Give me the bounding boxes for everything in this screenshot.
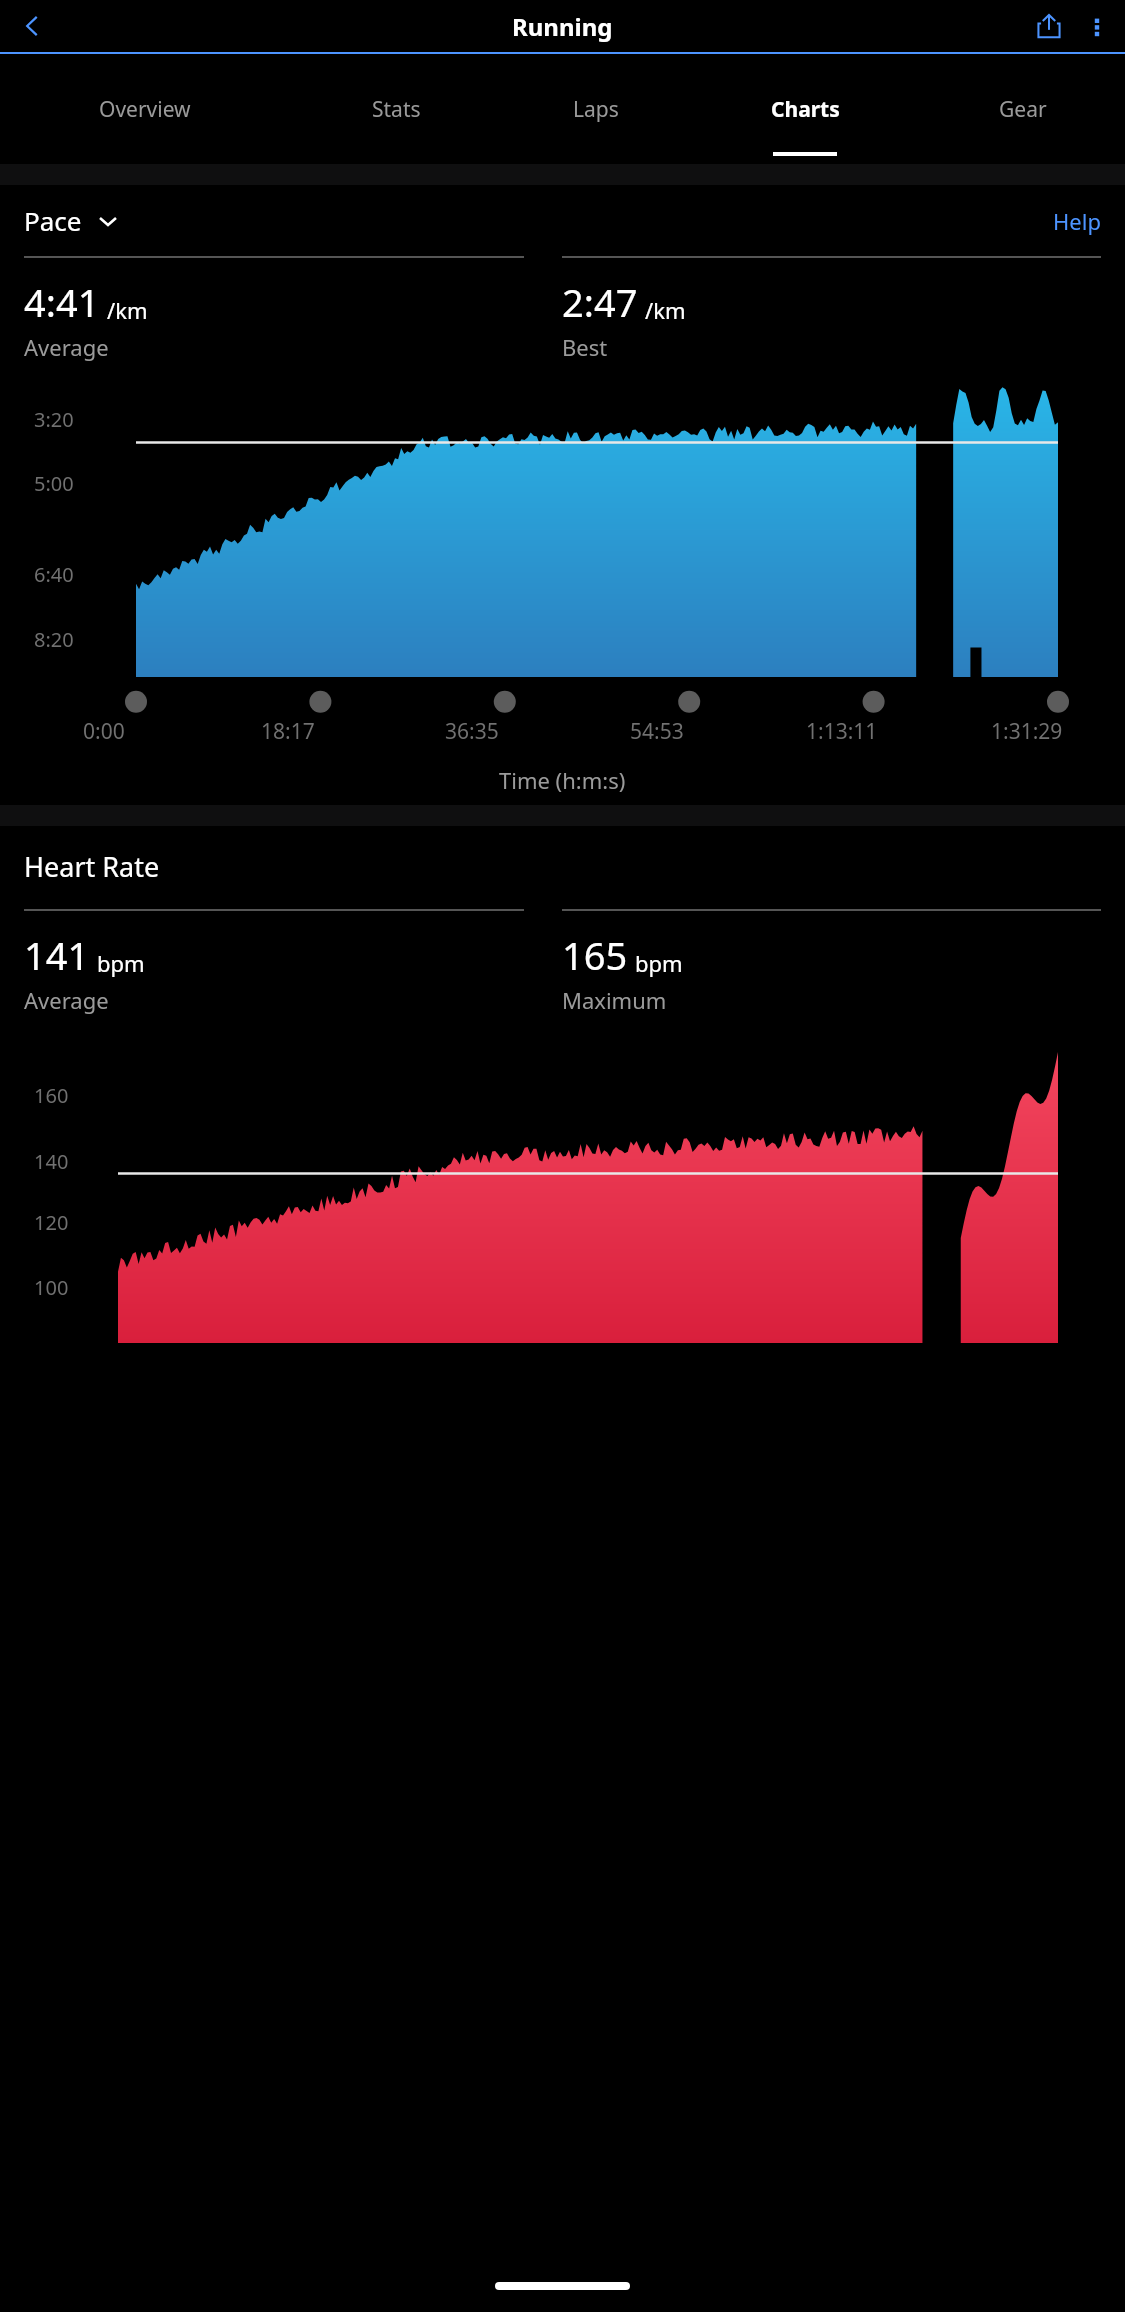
staticText: 100 [34,1274,69,1301]
staticText: Laps [573,95,619,124]
button[interactable]: More options [1073,2,1121,50]
staticText: /km [645,295,686,325]
staticText: 6:40 [34,561,74,588]
button[interactable]: Stats [290,54,503,164]
button[interactable]: Heart Rate [24,848,160,885]
button[interactable]: Pace [24,203,118,238]
staticText: 3:20 [34,406,74,433]
button[interactable]: Share [1025,2,1073,50]
staticText: 141 [24,929,90,981]
button[interactable]: Back [10,4,54,48]
staticText: 0:00 [83,717,125,746]
staticText: Charts [771,95,840,124]
staticText: 4:41 [24,276,100,328]
button[interactable]: Help [1053,206,1101,236]
button[interactable]: Charts [689,54,921,164]
staticText: Gear [999,95,1047,124]
staticText: bpm [635,948,683,978]
staticText: 1:31:29 [991,717,1063,746]
staticText: Pace [24,203,82,238]
button[interactable]: Overview [0,54,290,164]
staticText: 54:53 [630,717,684,746]
staticText: Help [1053,206,1101,236]
staticText: Best [562,332,608,362]
staticText: 8:20 [34,626,74,653]
staticText: Running [512,10,613,43]
staticText: 5:00 [34,470,74,497]
staticText: bpm [97,948,145,978]
staticText: Maximum [562,985,667,1015]
button[interactable]: Gear [921,54,1125,164]
staticText: 1:13:11 [806,717,878,746]
staticText: Stats [372,95,421,124]
staticText: Average [24,985,109,1015]
staticText: 120 [34,1209,69,1236]
staticText: Average [24,332,109,362]
staticText: 36:35 [445,717,499,746]
staticText: 160 [34,1082,69,1109]
staticText: /km [107,295,148,325]
staticText: 165 [562,929,628,981]
staticText: 2:47 [562,276,638,328]
staticText: 140 [34,1148,69,1175]
staticText: 18:17 [261,717,315,746]
staticText: Overview [99,95,191,124]
staticText: Heart Rate [24,848,160,885]
staticText: Time (h:m:s) [499,765,626,795]
button[interactable]: Laps [503,54,689,164]
